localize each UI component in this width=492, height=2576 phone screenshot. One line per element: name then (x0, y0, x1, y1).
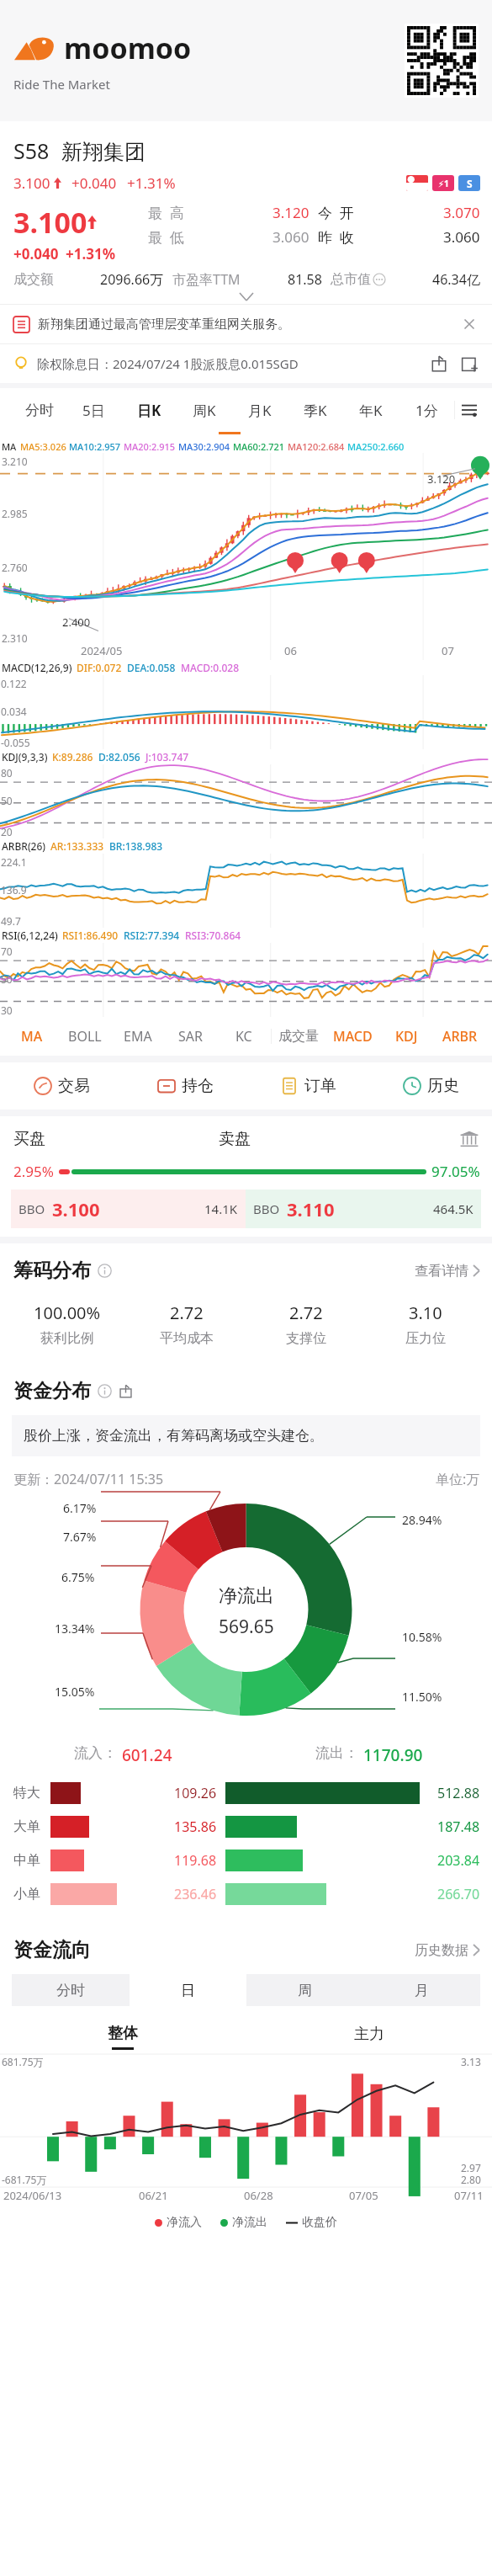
staticText: 50 (1, 972, 13, 986)
staticText: 平均成本 (160, 1330, 214, 1347)
staticText: 07 (442, 643, 454, 658)
button[interactable]: MACD (325, 1017, 379, 1056)
button[interactable]: SAR (164, 1017, 217, 1056)
staticText: 2.310 (2, 631, 28, 645)
staticText: 0.034 (1, 705, 27, 718)
staticText: 流出： (315, 1744, 358, 1762)
staticText: 大单 (13, 1818, 50, 1835)
button[interactable]: BBO (11, 1190, 246, 1228)
button[interactable]: 月 (363, 1974, 480, 2006)
staticText: 0.122 (1, 677, 27, 690)
button[interactable]: BBO (246, 1190, 481, 1228)
staticText: 70 (1, 945, 13, 958)
staticText: +1.31% (127, 173, 176, 193)
staticText: -681.75万 (2, 2173, 47, 2186)
staticText: 股价上涨，资金流出，有筹码离场或空头建仓。 (24, 1427, 324, 1445)
button[interactable]: 历史 (369, 1062, 492, 1110)
staticText: 3.210 (2, 455, 28, 468)
staticText: moomoo (64, 29, 192, 67)
staticText: ⚡1 (438, 178, 449, 189)
staticText: +1.31% (66, 244, 116, 263)
staticText: 市盈率TTM (172, 270, 241, 289)
button[interactable]: 日K (121, 388, 177, 432)
staticText: 月K (248, 401, 272, 420)
staticText: 07/11 (454, 2188, 484, 2203)
staticText: J:103.747 (145, 750, 189, 764)
staticText: 整体 (108, 2024, 138, 2043)
staticText: 3.10 (409, 1301, 442, 1324)
button[interactable]: 1分 (399, 388, 454, 432)
staticText: MA120:2.684 (288, 440, 345, 453)
staticText: 2024/05 (81, 643, 123, 658)
staticText: 6.75% (61, 1569, 95, 1585)
staticText: 分时 (25, 402, 54, 419)
staticText: 成交额 (13, 271, 54, 288)
staticText: 80 (1, 766, 13, 780)
button[interactable]: 主力 (246, 2020, 492, 2053)
button[interactable]: BOLL (58, 1017, 111, 1056)
button[interactable]: 交易 (0, 1062, 124, 1110)
staticText: RSI2:77.394 (124, 929, 180, 942)
staticText: KC (235, 1027, 252, 1046)
staticText: 昨 收 (318, 227, 354, 247)
button[interactable]: 日 (130, 1974, 246, 2006)
staticText: 49.7 (1, 914, 21, 928)
button[interactable]: 资金流向 (13, 1938, 480, 1962)
button[interactable]: Share (119, 1384, 133, 1398)
button[interactable]: 分时 (12, 1974, 130, 2006)
staticText: 2.95% (13, 1162, 54, 1181)
button[interactable]: MA (5, 1017, 58, 1056)
button[interactable]: 成交量 (272, 1017, 325, 1056)
staticText: 除权除息日：2024/07/24 1股派股息0.015SGD (37, 355, 299, 372)
staticText: 净流出 (232, 2215, 267, 2230)
staticText: 中单 (13, 1852, 50, 1869)
staticText: 3.120 (427, 471, 456, 487)
staticText: 07/05 (349, 2188, 378, 2203)
button[interactable]: 年K (343, 388, 399, 432)
button[interactable]: 筹码分布 (13, 1259, 480, 1283)
staticText: ARBR(26) (2, 839, 46, 853)
button[interactable]: Add to calendar (460, 354, 479, 373)
staticText: 年K (359, 401, 383, 420)
staticText: 2096.66万 (100, 270, 164, 289)
button[interactable]: 持仓 (124, 1062, 246, 1110)
staticText: 分时 (56, 1982, 85, 1999)
staticText: MA (21, 1027, 43, 1046)
staticText: +0.040 (71, 173, 117, 193)
staticText: 新翔集团通过最高管理层变革重组网关服务。 (38, 317, 290, 333)
staticText: +0.040 (13, 244, 59, 263)
button[interactable]: 分时 (12, 388, 66, 432)
button[interactable]: 月K (232, 388, 288, 432)
button[interactable]: 新翔集团通过最高管理层变革重组网关服务。 (0, 305, 492, 343)
staticText: 3.100 (13, 173, 50, 193)
button[interactable]: Exchange (458, 1128, 480, 1150)
staticText: RSI1:86.490 (62, 929, 119, 942)
button[interactable]: Indicator settings (455, 388, 484, 432)
staticText: 支撑位 (286, 1330, 326, 1347)
staticText: 236.46 (174, 1885, 217, 1903)
staticText: MA30:2.904 (178, 440, 230, 453)
staticText: 2024/06/13 (3, 2188, 62, 2203)
staticText: -0.055 (1, 736, 30, 749)
staticText: 187.48 (437, 1818, 480, 1836)
button[interactable]: 周K (177, 388, 232, 432)
staticText: RSI3:70.864 (185, 929, 241, 942)
button[interactable]: 周 (246, 1974, 363, 2006)
staticText: 今 开 (318, 203, 354, 222)
button[interactable]: Share (430, 354, 448, 373)
button[interactable]: EMA (111, 1017, 164, 1056)
button[interactable]: 5日 (66, 388, 121, 432)
button[interactable]: 订单 (246, 1062, 369, 1110)
button[interactable]: 季K (288, 388, 343, 432)
button[interactable]: KC (217, 1017, 271, 1056)
staticText: MACD(12,26,9) (2, 661, 72, 674)
button[interactable]: ARBR (433, 1017, 487, 1056)
button[interactable]: Close (460, 315, 479, 333)
staticText: BBO (253, 1200, 280, 1217)
staticText: 109.26 (174, 1784, 217, 1802)
button[interactable]: 整体 (0, 2020, 246, 2053)
staticText: MACD (333, 1027, 373, 1046)
button[interactable]: KDJ (379, 1017, 433, 1056)
button[interactable]: 除权除息日：2024/07/24 1股派股息0.015SGD (0, 344, 492, 383)
staticText: Ride The Market (13, 76, 110, 93)
